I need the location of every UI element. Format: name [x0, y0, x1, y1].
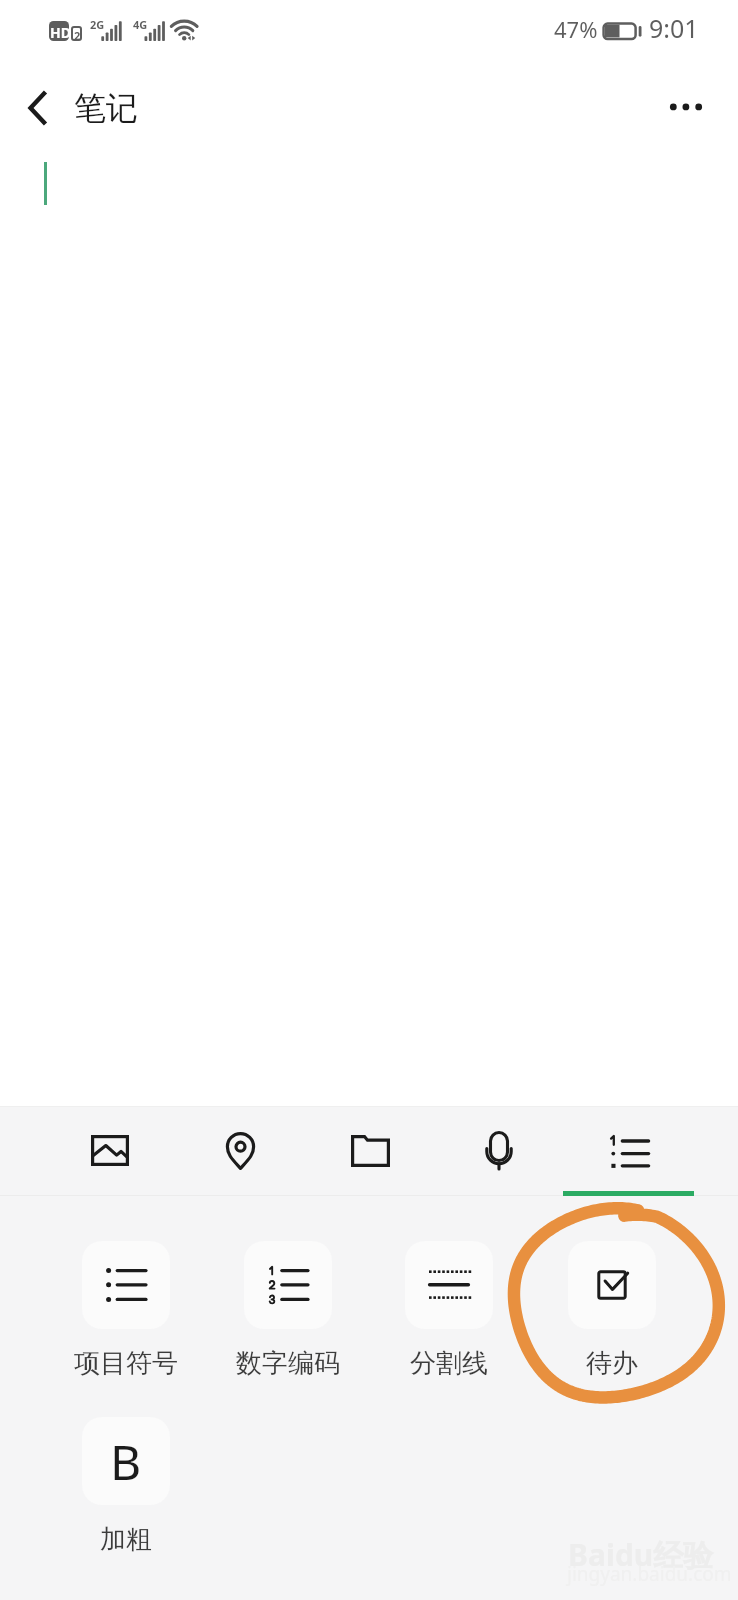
staticText: 待办 [512, 1347, 712, 1380]
staticText: 9:01 [649, 11, 699, 45]
staticText: 47% [554, 14, 598, 44]
button[interactable]: List formatting [574, 1106, 684, 1195]
button[interactable]: Back [8, 79, 66, 137]
button[interactable]: More options [658, 80, 714, 136]
staticText: B [110, 1429, 142, 1494]
staticText: 项目符号 [26, 1347, 226, 1380]
staticText: 分割线 [349, 1347, 549, 1380]
staticText: HD [50, 23, 71, 42]
staticText: 2G [90, 17, 105, 32]
button[interactable]: Insert image [55, 1106, 165, 1195]
staticText: 数字编码 [188, 1347, 388, 1380]
button[interactable]: Location [185, 1106, 295, 1195]
staticText: Baidu经验 [568, 1534, 714, 1575]
button[interactable]: Folder [315, 1106, 425, 1195]
button[interactable]: Voice input [444, 1106, 554, 1195]
button[interactable]: 分割线 [405, 1241, 493, 1329]
button[interactable]: 数字编码 [244, 1241, 332, 1329]
staticText: 加粗 [26, 1523, 226, 1556]
staticText: 笔记 [74, 88, 138, 128]
button[interactable]: 项目符号 [82, 1241, 170, 1329]
button[interactable]: 加粗 [82, 1417, 170, 1505]
staticText: 4G [133, 17, 148, 32]
staticText: 2 [74, 28, 81, 43]
button[interactable]: 待办 [568, 1241, 656, 1329]
staticText: jingyan.baidu.com [567, 1561, 732, 1587]
